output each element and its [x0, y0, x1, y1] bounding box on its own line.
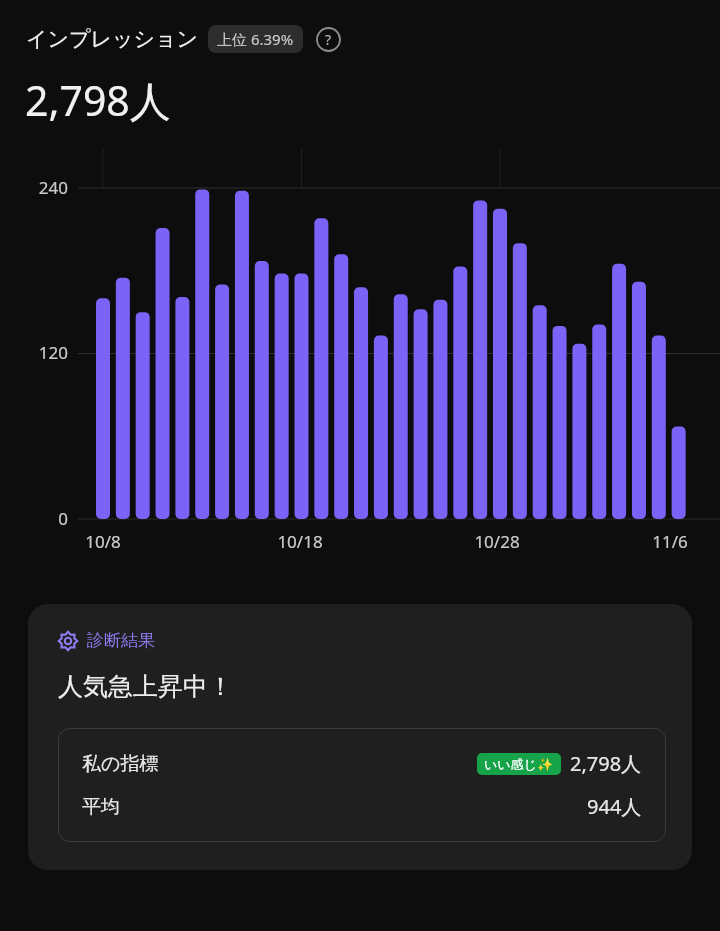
- button[interactable]: 診断結果の設定: [28, 604, 692, 870]
- staticText: 平均: [82, 795, 120, 819]
- staticText: 240: [0, 176, 68, 199]
- staticText: インプレッション: [26, 26, 198, 52]
- button[interactable]: 診断結果の設定: [58, 631, 78, 651]
- staticText: 診断結果: [87, 630, 155, 651]
- button[interactable]: ヘルプ: [314, 25, 342, 53]
- staticText: 11/6: [634, 530, 706, 553]
- staticText: いい感じ✨: [484, 756, 554, 772]
- staticText: 10/18: [264, 530, 336, 553]
- staticText: ?: [325, 30, 332, 49]
- staticText: 2,798人: [570, 750, 642, 777]
- staticText: 人気急上昇中！: [58, 671, 233, 702]
- staticText: 0: [0, 507, 68, 530]
- button[interactable]: 上位 6.39%: [208, 25, 303, 53]
- staticText: 2,798人: [25, 72, 171, 128]
- staticText: 上位 6.39%: [217, 29, 294, 49]
- staticText: 私の指標: [82, 752, 159, 776]
- staticText: 120: [0, 341, 68, 364]
- staticText: 10/28: [461, 530, 533, 553]
- staticText: 944人: [587, 793, 642, 820]
- staticText: 10/8: [67, 530, 139, 553]
